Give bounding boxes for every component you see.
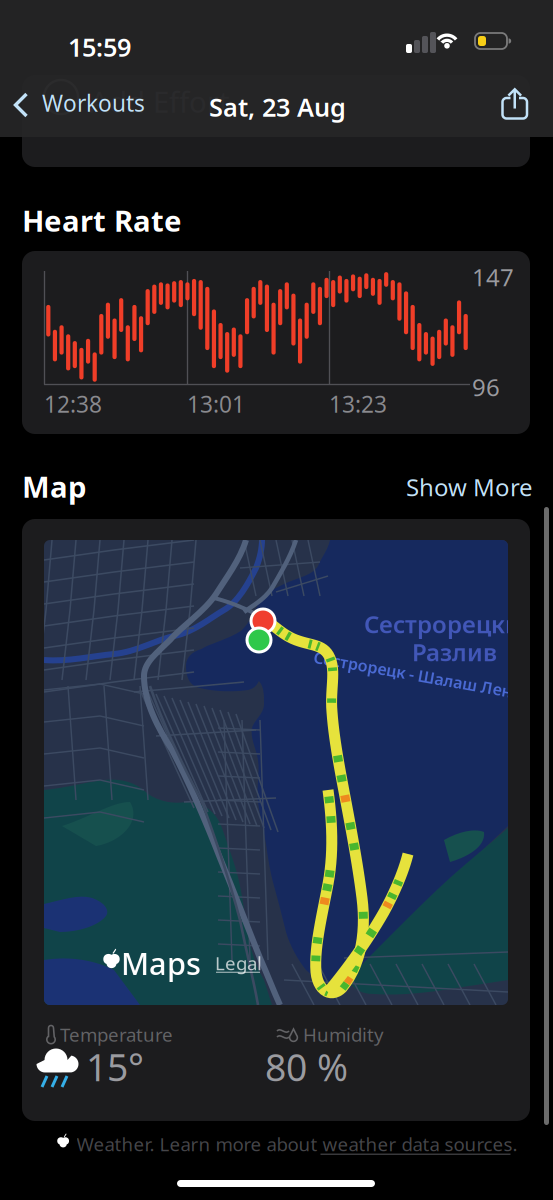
- staticText: Сестрорецкий: [364, 608, 537, 640]
- staticText: Map: [22, 467, 87, 506]
- button[interactable]: Show More: [398, 466, 541, 508]
- staticText: Weather. Learn more about weather data s…: [76, 1132, 517, 1156]
- staticText: Temperature: [60, 1022, 173, 1047]
- staticText: 13:01: [187, 389, 245, 419]
- staticText: Maps: [121, 943, 201, 983]
- staticText: 15:59: [68, 30, 131, 64]
- staticText: Workouts: [42, 88, 145, 118]
- staticText: 13:23: [329, 389, 387, 419]
- staticText: Sat, 23 Aug: [209, 90, 346, 124]
- staticText: 15°: [86, 1042, 144, 1092]
- staticText: 96: [472, 371, 500, 403]
- button[interactable]: Workouts: [0, 0, 160, 137]
- staticText: Разлив: [412, 636, 497, 668]
- staticText: Legal: [215, 951, 262, 975]
- staticText: 80 %: [265, 1042, 348, 1092]
- staticText: Add Effort: [90, 82, 230, 121]
- staticText: 12:38: [44, 389, 102, 419]
- button[interactable]: Share: [488, 78, 542, 130]
- staticText: Show More: [406, 471, 533, 503]
- staticText: Сестрорецк - Шалаш Ленина: [312, 666, 542, 687]
- staticText: Humidity: [303, 1022, 384, 1047]
- staticText: 147: [472, 261, 514, 293]
- staticText: Heart Rate: [22, 201, 182, 240]
